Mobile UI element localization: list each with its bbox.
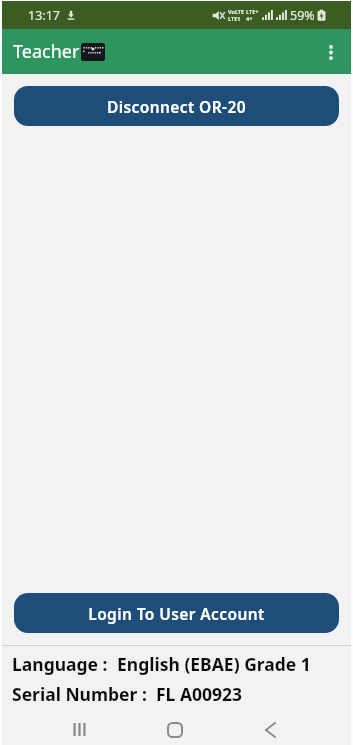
staticText: 4+ [246,15,253,22]
staticText: Teacher [13,39,80,64]
staticText: Login To User Account [88,603,265,624]
staticText: English (EBAE) Grade 1 [117,652,311,676]
staticText: LTE1 [228,15,241,22]
staticText: LTE+ [246,8,259,15]
button[interactable]: Home [153,714,197,745]
button[interactable]: Login To User Account [14,593,339,633]
staticText: Disconnect OR-20 [107,96,246,117]
button[interactable]: Disconnect OR-20 [14,86,339,126]
staticText: 13:17 [28,7,60,24]
staticText: VoLTE [228,8,245,15]
button[interactable]: Recent apps [57,714,101,745]
staticText: Serial Number : [12,682,147,706]
staticText: Language : [12,652,108,676]
staticText: FL A00923 [156,682,243,706]
staticText: 59% [290,7,315,24]
button[interactable]: More options [313,34,349,70]
button[interactable]: Back [248,714,292,745]
